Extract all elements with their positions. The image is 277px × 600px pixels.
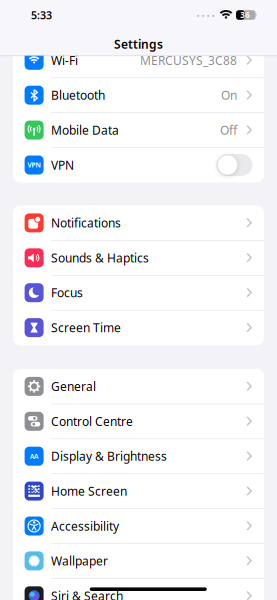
button[interactable]: Wi-Fi — [13, 43, 264, 78]
button[interactable]: Siri & Search — [13, 578, 264, 600]
staticText: Home Screen — [51, 483, 127, 499]
staticText: Display & Brightness — [51, 448, 167, 464]
staticText: Wi-Fi — [51, 52, 78, 68]
staticText: 5:33 — [31, 8, 52, 22]
button[interactable]: General — [13, 369, 264, 404]
button[interactable]: Sounds & Haptics — [13, 240, 264, 275]
staticText: Focus — [51, 285, 83, 301]
staticText: Wallpaper — [51, 553, 108, 569]
button[interactable]: Bluetooth — [13, 78, 264, 113]
staticText: Notifications — [51, 215, 121, 231]
staticText: VPN — [28, 161, 41, 169]
staticText: Siri & Search — [51, 588, 123, 600]
button[interactable]: Mobile Data — [13, 113, 264, 147]
staticText: Screen Time — [51, 320, 121, 335]
button[interactable]: AA — [13, 439, 264, 474]
staticText: Off — [220, 122, 237, 138]
staticText: Control Centre — [51, 413, 133, 429]
staticText: Sounds & Haptics — [51, 250, 149, 266]
staticText: General — [51, 378, 96, 394]
staticText: Mobile Data — [51, 122, 119, 138]
staticText: Bluetooth — [51, 87, 105, 103]
button[interactable]: Home Screen — [13, 474, 264, 509]
button[interactable]: Focus — [13, 275, 264, 310]
button[interactable]: Accessibility — [13, 509, 264, 543]
staticText: MERCUSYS_3C88 — [140, 52, 237, 68]
button[interactable]: Notifications — [13, 205, 264, 240]
staticText: 36 — [240, 10, 250, 20]
staticText: VPN — [51, 157, 74, 173]
button[interactable]: VPN — [13, 148, 264, 182]
button[interactable]: VPN — [216, 154, 252, 176]
button[interactable]: Control Centre — [13, 404, 264, 439]
button[interactable]: Screen Time — [13, 310, 264, 345]
staticText: AA — [30, 452, 38, 461]
staticText: On — [221, 87, 237, 103]
staticText: Accessibility — [51, 518, 119, 534]
button[interactable]: Wallpaper — [13, 543, 264, 578]
staticText: Settings — [114, 36, 163, 52]
